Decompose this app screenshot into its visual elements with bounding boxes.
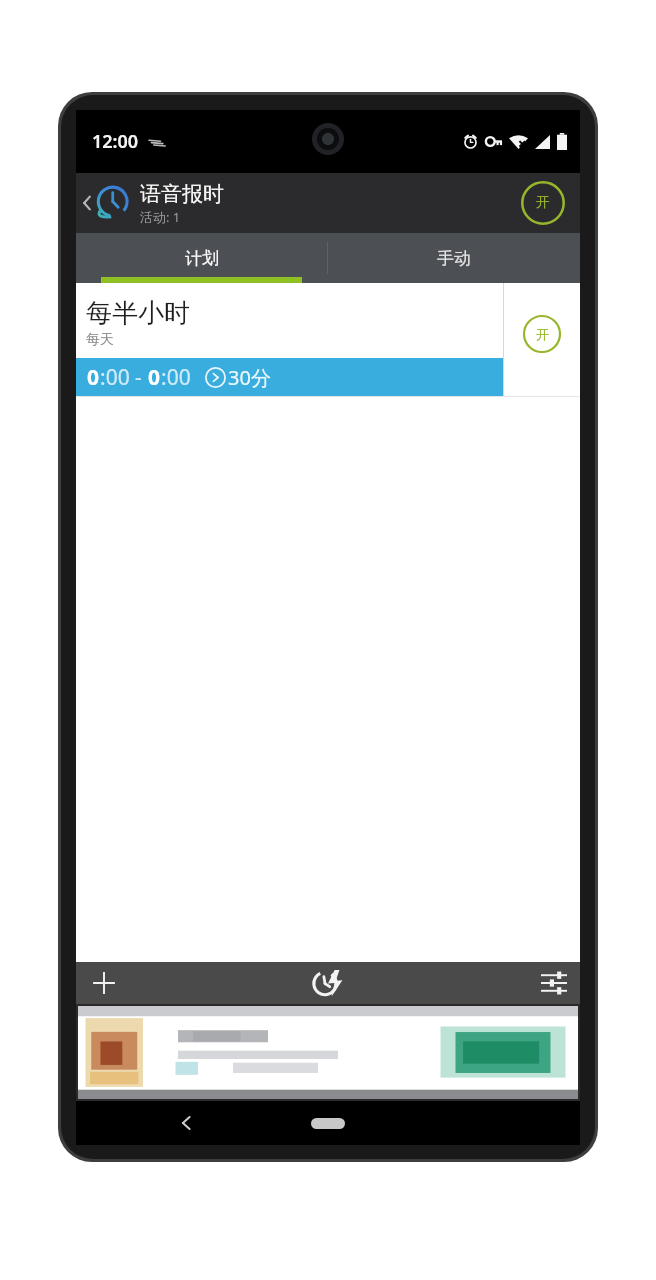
button[interactable]: Quick alarm: [298, 962, 358, 1004]
staticText: 每半小时: [86, 297, 190, 330]
button[interactable]: Toggle service on: [520, 180, 566, 226]
button[interactable]: Toggle schedule on: [504, 283, 580, 396]
button[interactable]: Up: [76, 185, 132, 221]
staticText: 12:00: [92, 129, 139, 154]
staticText: 语音报时: [140, 181, 224, 207]
staticText: 0: [148, 363, 161, 392]
staticText: 手动: [437, 248, 471, 269]
button[interactable]: 计划: [76, 233, 327, 283]
staticText: :00: [161, 363, 191, 392]
staticText: :00 -: [100, 363, 148, 392]
staticText: 计划: [185, 248, 219, 269]
button[interactable]: Back: [164, 1101, 208, 1145]
staticText: 开: [536, 194, 550, 212]
button[interactable]: 手动: [328, 233, 580, 283]
staticText: 开: [536, 326, 549, 342]
button[interactable]: Home: [300, 1103, 356, 1143]
staticText: 每天: [86, 331, 114, 349]
button[interactable]: Settings: [528, 962, 580, 1004]
staticText: 活动: 1: [140, 208, 181, 226]
button[interactable]: 每半小时: [76, 283, 503, 396]
staticText: 0: [87, 363, 100, 392]
button[interactable]: Add: [76, 962, 132, 1004]
staticText: 30分: [228, 364, 271, 391]
